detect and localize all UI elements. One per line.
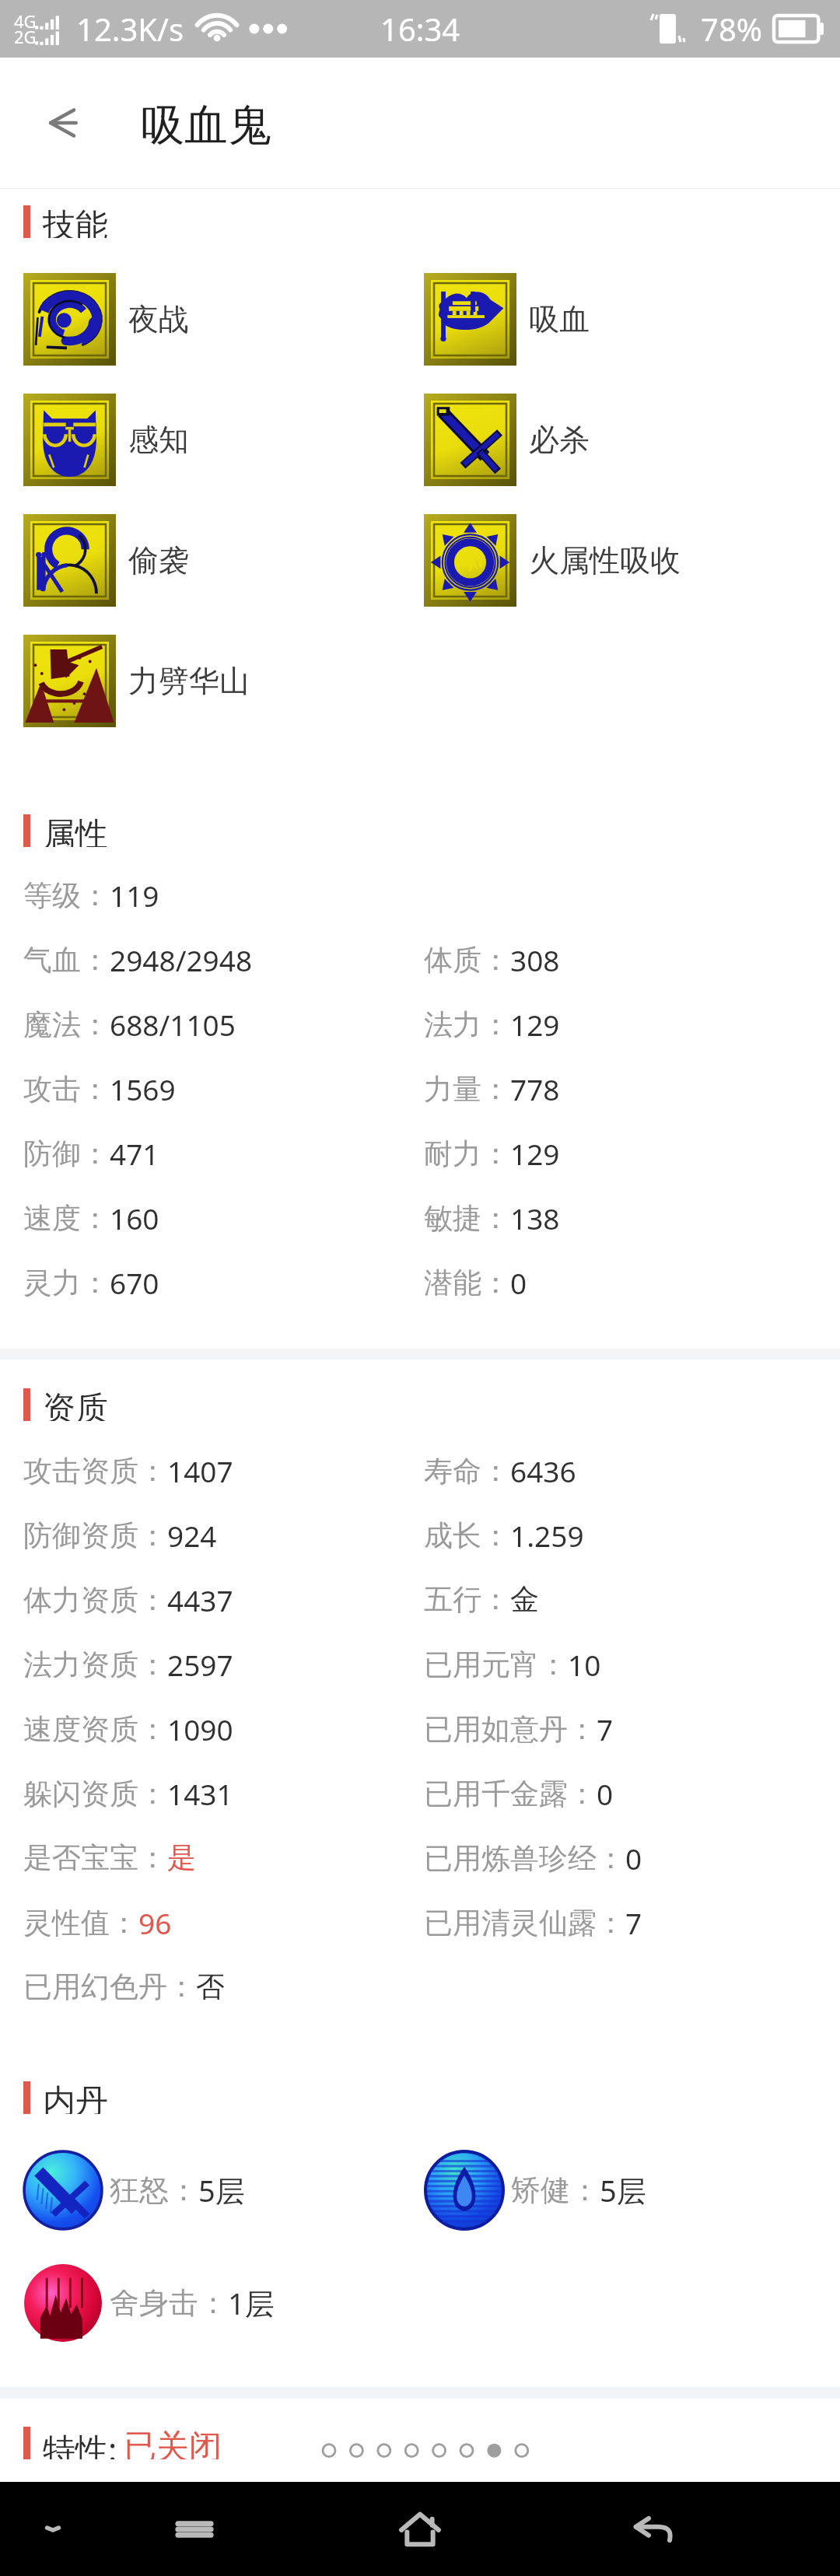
staticText: 内丹 [43, 2081, 108, 2114]
staticText: 等级： [23, 877, 110, 914]
staticText: 躲闪资质： [23, 1776, 167, 1812]
staticText: 1431 [167, 1774, 233, 1813]
staticText: 敏捷： [424, 1200, 510, 1237]
button[interactable]: 舍身击： [23, 2263, 412, 2343]
staticText: 119 [110, 876, 159, 915]
staticText: 308 [510, 940, 560, 979]
staticText: 感知 [128, 421, 189, 459]
staticText: 1407 [167, 1451, 233, 1490]
staticText: 必杀 [529, 421, 590, 459]
staticText: 是 [167, 1839, 196, 1876]
staticText: 96 [138, 1903, 172, 1942]
staticText: 471 [110, 1134, 159, 1173]
staticText: 防御资质： [23, 1517, 167, 1554]
staticText: 16:34 [380, 8, 460, 50]
button[interactable]: Back [19, 79, 106, 166]
staticText: 舍身击： [110, 2284, 228, 2322]
staticText: 力量： [424, 1071, 510, 1108]
staticText: 已用如意丹： [424, 1711, 597, 1748]
staticText: 潜能： [424, 1265, 510, 1301]
button[interactable]: 夜战 [23, 273, 412, 366]
staticText: 攻击： [23, 1071, 110, 1108]
staticText: 7 [597, 1710, 614, 1748]
staticText: 138 [510, 1199, 560, 1237]
staticText: 0 [510, 1263, 527, 1302]
staticText: 5层 [600, 2170, 646, 2210]
button[interactable]: Home [342, 2482, 498, 2576]
button[interactable]: 力劈华山 [23, 635, 412, 727]
button[interactable]: Back [576, 2482, 731, 2576]
staticText: 矫健： [511, 2172, 600, 2209]
staticText: 属性 [43, 814, 108, 847]
staticText: 已用幻色丹： [23, 1969, 196, 2005]
staticText: 670 [110, 1263, 159, 1302]
staticText: 已用千金露： [424, 1776, 597, 1812]
button[interactable]: 矫健： [424, 2150, 646, 2231]
staticText: 攻击资质： [23, 1453, 167, 1489]
staticText: 力劈华山 [128, 662, 250, 700]
button[interactable]: 必杀 [424, 394, 590, 486]
button[interactable]: 火属性吸收 [424, 514, 681, 607]
staticText: 防御： [23, 1136, 110, 1172]
staticText: 寿命： [424, 1453, 510, 1489]
staticText: 资质 [43, 1388, 108, 1421]
staticText: 火属性吸收 [529, 541, 681, 579]
staticText: 129 [510, 1134, 560, 1173]
staticText: 0 [625, 1839, 642, 1878]
staticText: 7 [625, 1903, 642, 1942]
button[interactable]: 狂怒： [23, 2150, 412, 2231]
staticText: 吸血 [529, 300, 590, 338]
button[interactable]: 吸血 [424, 273, 590, 366]
staticText: 1090 [167, 1710, 233, 1748]
staticText: 2597 [167, 1645, 233, 1684]
button[interactable]: Menu [124, 2482, 264, 2576]
staticText: 成长： [424, 1517, 510, 1554]
staticText: 129 [510, 1005, 560, 1044]
staticText: 已用清灵仙露： [424, 1905, 625, 1941]
staticText: 否 [196, 1969, 225, 2005]
staticText: 924 [167, 1516, 217, 1555]
staticText: 4G [14, 9, 37, 33]
staticText: 灵力： [23, 1265, 110, 1301]
staticText: 1层 [228, 2283, 275, 2323]
staticText: 已用元宵： [424, 1647, 568, 1683]
staticText: 78% [701, 8, 762, 50]
staticText: 0 [597, 1774, 614, 1813]
staticText: 4437 [167, 1580, 233, 1619]
staticText: 1.259 [510, 1516, 584, 1555]
staticText: 5层 [198, 2170, 245, 2210]
staticText: 778 [510, 1069, 560, 1108]
staticText: 灵性值： [23, 1905, 138, 1941]
staticText: 688/1105 [110, 1005, 236, 1044]
staticText: 已关闭 [124, 2427, 222, 2459]
staticText: 技能 [43, 205, 108, 238]
staticText: 体力资质： [23, 1582, 167, 1619]
staticText: 6436 [510, 1451, 576, 1490]
staticText: 是否宝宝： [23, 1839, 167, 1876]
staticText: 法力： [424, 1006, 510, 1043]
button[interactable]: 感知 [23, 394, 412, 486]
staticText: 狂怒： [110, 2172, 198, 2209]
staticText: 夜战 [128, 300, 189, 338]
staticText: 偷袭 [128, 541, 189, 579]
staticText: 速度： [23, 1200, 110, 1237]
staticText: 12.3K/s [76, 8, 184, 50]
button[interactable]: Hide keyboard [0, 2482, 106, 2576]
button[interactable]: 偷袭 [23, 514, 412, 607]
staticText: 耐力： [424, 1136, 510, 1172]
staticText: 已用炼兽珍经： [424, 1840, 625, 1877]
staticText: 10 [568, 1645, 601, 1684]
staticText: 吸血鬼 [141, 98, 271, 153]
staticText: 2948/2948 [110, 940, 253, 979]
staticText: 魔法： [23, 1006, 110, 1043]
staticText: 速度资质： [23, 1711, 167, 1748]
staticText: 特性: [43, 2427, 117, 2459]
staticText: 体质： [424, 942, 510, 978]
staticText: 气血： [23, 942, 110, 978]
staticText: 五行： [424, 1581, 510, 1618]
staticText: 1569 [110, 1069, 176, 1108]
staticText: 2G [14, 25, 37, 48]
staticText: 金 [510, 1581, 539, 1618]
staticText: 法力资质： [23, 1647, 167, 1683]
staticText: 160 [110, 1199, 159, 1237]
